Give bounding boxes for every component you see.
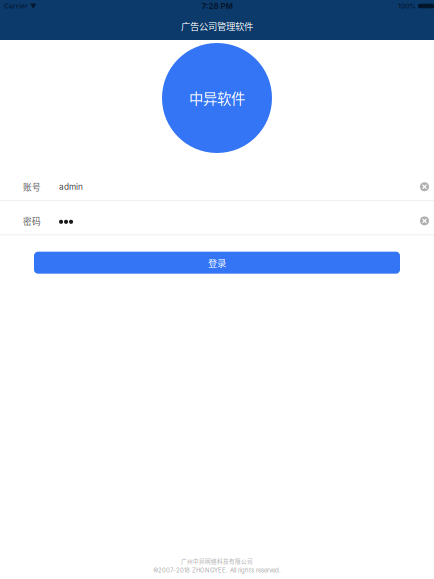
staticText: 广告公司管理软件: [181, 19, 253, 33]
staticText: 中异软件: [189, 88, 245, 108]
staticText: Carrier: [4, 2, 28, 10]
staticText: ▼: [30, 2, 37, 10]
button[interactable]: 账号: [23, 180, 415, 193]
staticText: 广州中异网络科技有限公司: [181, 557, 253, 565]
button[interactable]: 登录: [34, 252, 400, 274]
button[interactable]: Clear text: [415, 175, 434, 199]
staticText: ©2007-2018 ZHONGYEE. All rights reserved…: [153, 567, 281, 574]
button[interactable]: 密码: [23, 215, 415, 227]
staticText: 100%: [398, 2, 416, 10]
staticText: 7:28 PM: [201, 1, 232, 11]
staticText: 密码: [23, 215, 41, 227]
staticText: 登录: [208, 256, 226, 269]
staticText: admin: [59, 182, 83, 192]
button[interactable]: Clear text: [415, 209, 434, 233]
staticText: 账号: [23, 180, 41, 193]
